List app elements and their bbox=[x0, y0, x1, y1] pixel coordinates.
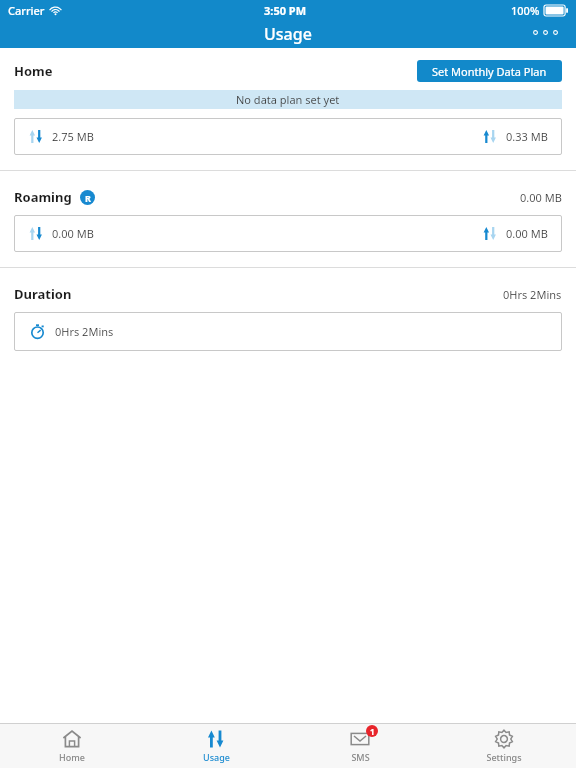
staticText: 0Hrs 2Mins bbox=[55, 324, 114, 339]
button[interactable]: 0.00 MB bbox=[14, 215, 562, 252]
button[interactable]: More options bbox=[529, 26, 562, 39]
staticText: Settings bbox=[486, 751, 522, 763]
button[interactable]: 0Hrs 2Mins bbox=[14, 312, 562, 351]
staticText: Usage bbox=[203, 751, 230, 763]
staticText: Roaming bbox=[14, 188, 72, 206]
staticText: Home bbox=[59, 751, 85, 763]
button[interactable]: Settings bbox=[432, 724, 576, 768]
staticText: 0.00 MB bbox=[52, 226, 94, 241]
staticText: No data plan set yet bbox=[236, 92, 340, 107]
staticText: 1 bbox=[370, 726, 375, 737]
button[interactable]: 2.75 MB bbox=[14, 118, 562, 155]
staticText: 2.75 MB bbox=[52, 129, 94, 144]
staticText: Carrier bbox=[8, 3, 45, 18]
staticText: Home bbox=[14, 62, 53, 80]
button[interactable]: Set Monthly Data Plan bbox=[417, 60, 562, 82]
button[interactable]: Home bbox=[0, 724, 144, 768]
staticText: Usage bbox=[264, 23, 312, 45]
staticText: 0Hrs 2Mins bbox=[503, 287, 562, 302]
staticText: Set Monthly Data Plan bbox=[432, 64, 547, 79]
staticText: 3:50 PM bbox=[264, 3, 307, 18]
button[interactable]: 1 bbox=[288, 724, 432, 768]
staticText: 0.00 MB bbox=[506, 226, 548, 241]
staticText: 0.33 MB bbox=[506, 129, 548, 144]
staticText: R bbox=[85, 192, 91, 204]
staticText: Duration bbox=[14, 285, 72, 303]
staticText: 0.00 MB bbox=[520, 190, 562, 205]
staticText: SMS bbox=[351, 751, 370, 763]
button[interactable]: Usage bbox=[144, 724, 288, 768]
staticText: 100% bbox=[511, 3, 540, 18]
